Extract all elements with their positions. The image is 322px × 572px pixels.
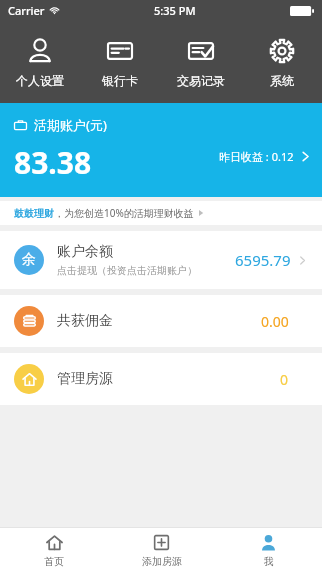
button[interactable]: 银行卡 bbox=[80, 21, 160, 103]
button[interactable]: 我 bbox=[215, 528, 322, 572]
staticText: 账户余额 bbox=[57, 243, 113, 261]
staticText: 余 bbox=[22, 251, 36, 269]
staticText: 交易记录 bbox=[177, 73, 225, 88]
staticText: 添加房源 bbox=[142, 555, 182, 568]
staticText: 银行卡 bbox=[102, 73, 138, 88]
staticText: 83.38 bbox=[14, 142, 92, 183]
staticText: 系统 bbox=[270, 73, 294, 88]
staticText: 鼓鼓理财 bbox=[14, 207, 54, 220]
button[interactable]: 交易记录 bbox=[160, 21, 241, 103]
button[interactable]: 管理房源 bbox=[0, 353, 322, 405]
staticText: 共获佣金 bbox=[57, 312, 261, 330]
staticText: ，为您创造10%的活期理财收益 bbox=[54, 206, 197, 220]
button[interactable]: 昨日收益 : 0.12 bbox=[219, 149, 312, 164]
button[interactable]: 系统 bbox=[241, 21, 322, 103]
button[interactable]: 活期账户(元) bbox=[0, 103, 322, 197]
button[interactable]: 鼓鼓理财 bbox=[0, 201, 322, 225]
button[interactable]: 共获佣金 bbox=[0, 295, 322, 347]
staticText: 0 bbox=[280, 370, 289, 389]
button[interactable]: 余 bbox=[0, 231, 322, 289]
staticText: 昨日收益 : 0.12 bbox=[219, 149, 294, 164]
button[interactable]: 添加房源 bbox=[108, 528, 215, 572]
staticText: 我 bbox=[264, 555, 274, 568]
staticText: 点击提现（投资点击活期账户） bbox=[57, 264, 197, 277]
other: 查看收益详情 bbox=[299, 150, 312, 163]
staticText: Carrier bbox=[8, 3, 45, 18]
staticText: 活期账户(元) bbox=[34, 116, 107, 134]
button[interactable]: 个人设置 bbox=[0, 21, 80, 103]
staticText: 个人设置 bbox=[16, 73, 64, 88]
staticText: 0.00 bbox=[261, 312, 289, 331]
button[interactable]: 首页 bbox=[0, 528, 108, 572]
staticText: 5:35 PM bbox=[154, 3, 196, 18]
staticText: 首页 bbox=[44, 555, 64, 568]
staticText: 管理房源 bbox=[57, 370, 280, 388]
staticText: 6595.79 bbox=[235, 250, 291, 270]
